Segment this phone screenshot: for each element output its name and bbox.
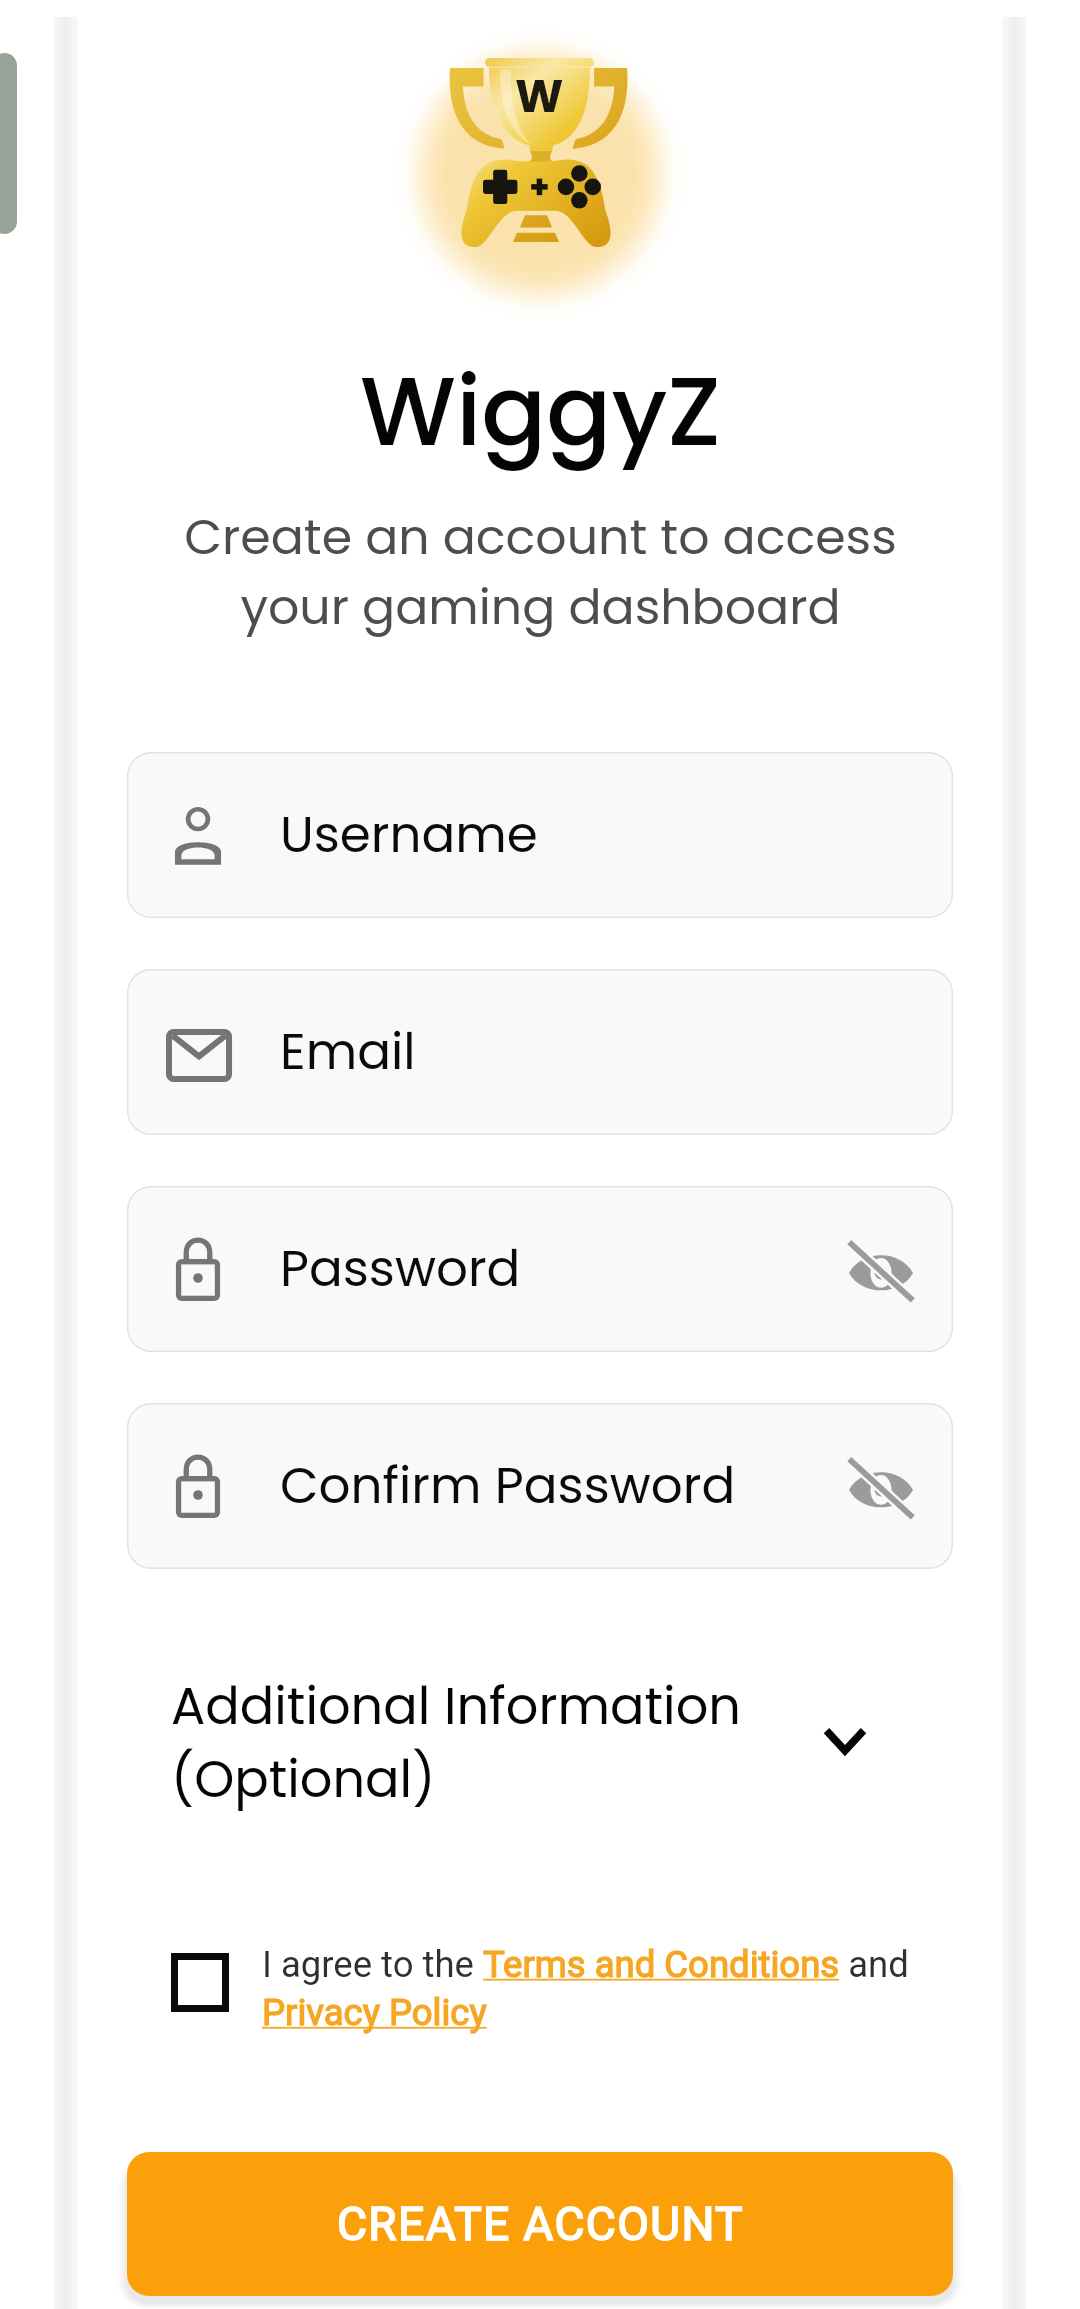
staticText: Create an account to access your gaming …	[184, 503, 897, 641]
button[interactable]: Additional Information (Optional)	[127, 1660, 953, 1830]
staticText: WiggyZ	[360, 344, 721, 478]
button[interactable]: Confirm Password	[127, 1403, 953, 1569]
button[interactable]: Show password	[809, 1403, 953, 1569]
staticText: Username	[280, 800, 538, 870]
button[interactable]: Username	[127, 752, 953, 918]
staticText: Additional Information (Optional)	[171, 1670, 741, 1814]
button[interactable]: Agree to terms and conditions	[167, 1949, 233, 2015]
button[interactable]: I agree to the Terms and Conditions and …	[262, 1943, 953, 2034]
staticText: Confirm Password	[280, 1451, 736, 1521]
button[interactable]: Password	[127, 1186, 953, 1352]
button[interactable]: CREATE ACCOUNT	[127, 2152, 953, 2296]
staticText: Password	[280, 1234, 521, 1304]
staticText: CREATE ACCOUNT	[337, 2197, 744, 2251]
staticText: Email	[280, 1017, 416, 1087]
button[interactable]: Email	[127, 969, 953, 1135]
staticText: W	[515, 64, 564, 124]
button[interactable]: Show password	[809, 1186, 953, 1352]
